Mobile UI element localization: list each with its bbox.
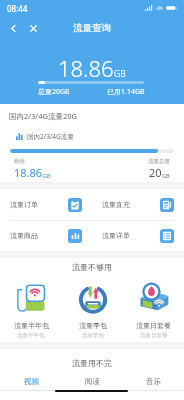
- button[interactable]: 音乐: [123, 377, 184, 390]
- staticText: 视频: [24, 377, 39, 386]
- staticText: 流量半年包: [17, 332, 45, 339]
- staticText: GB: [162, 172, 170, 179]
- staticText: 流量半年包: [14, 321, 49, 330]
- staticText: 08:44: [7, 3, 28, 14]
- staticText: 音乐: [146, 377, 161, 386]
- staticText: GB: [114, 68, 126, 80]
- staticText: 18.86: [58, 53, 114, 83]
- button[interactable]: 视频: [0, 377, 62, 390]
- staticText: 流量查询: [73, 22, 111, 34]
- button[interactable]: 流量订单: [0, 189, 92, 220]
- staticText: 流量季包: [79, 321, 107, 330]
- button[interactable]: 流量直充: [92, 189, 184, 220]
- staticText: 18.86: [14, 165, 43, 180]
- staticText: 阅读: [85, 377, 100, 386]
- staticText: 流量不够用: [72, 262, 112, 272]
- button[interactable]: Close: [24, 19, 42, 37]
- staticText: 总量20GB: [38, 87, 70, 97]
- staticText: 20: [149, 165, 162, 180]
- button[interactable]: 流量半年包: [0, 282, 62, 339]
- staticText: 国内2/3/4G流量20G: [9, 111, 77, 121]
- staticText: 流量日套餐: [136, 321, 171, 330]
- staticText: 流量直充: [102, 200, 130, 209]
- staticText: 流量订单: [10, 200, 38, 209]
- button[interactable]: 流量日套餐: [123, 282, 184, 339]
- button[interactable]: 流量详单: [92, 220, 184, 251]
- button[interactable]: Back: [4, 19, 22, 37]
- staticText: 流量季包: [82, 332, 104, 339]
- button[interactable]: 流量商品: [0, 220, 92, 251]
- staticText: 国内2/3/4G流量: [27, 132, 74, 141]
- staticText: 流量总量: [148, 158, 170, 165]
- staticText: 流量用不完: [72, 358, 112, 368]
- staticText: 剩余: [14, 158, 25, 165]
- button[interactable]: 流量季包: [62, 282, 123, 339]
- staticText: 流量详单: [102, 231, 130, 240]
- staticText: 流量日套餐: [140, 332, 168, 339]
- staticText: 流量商品: [10, 231, 38, 240]
- staticText: GB: [43, 172, 51, 179]
- staticText: 已用1.14GB: [107, 87, 145, 97]
- button[interactable]: 阅读: [62, 377, 123, 390]
